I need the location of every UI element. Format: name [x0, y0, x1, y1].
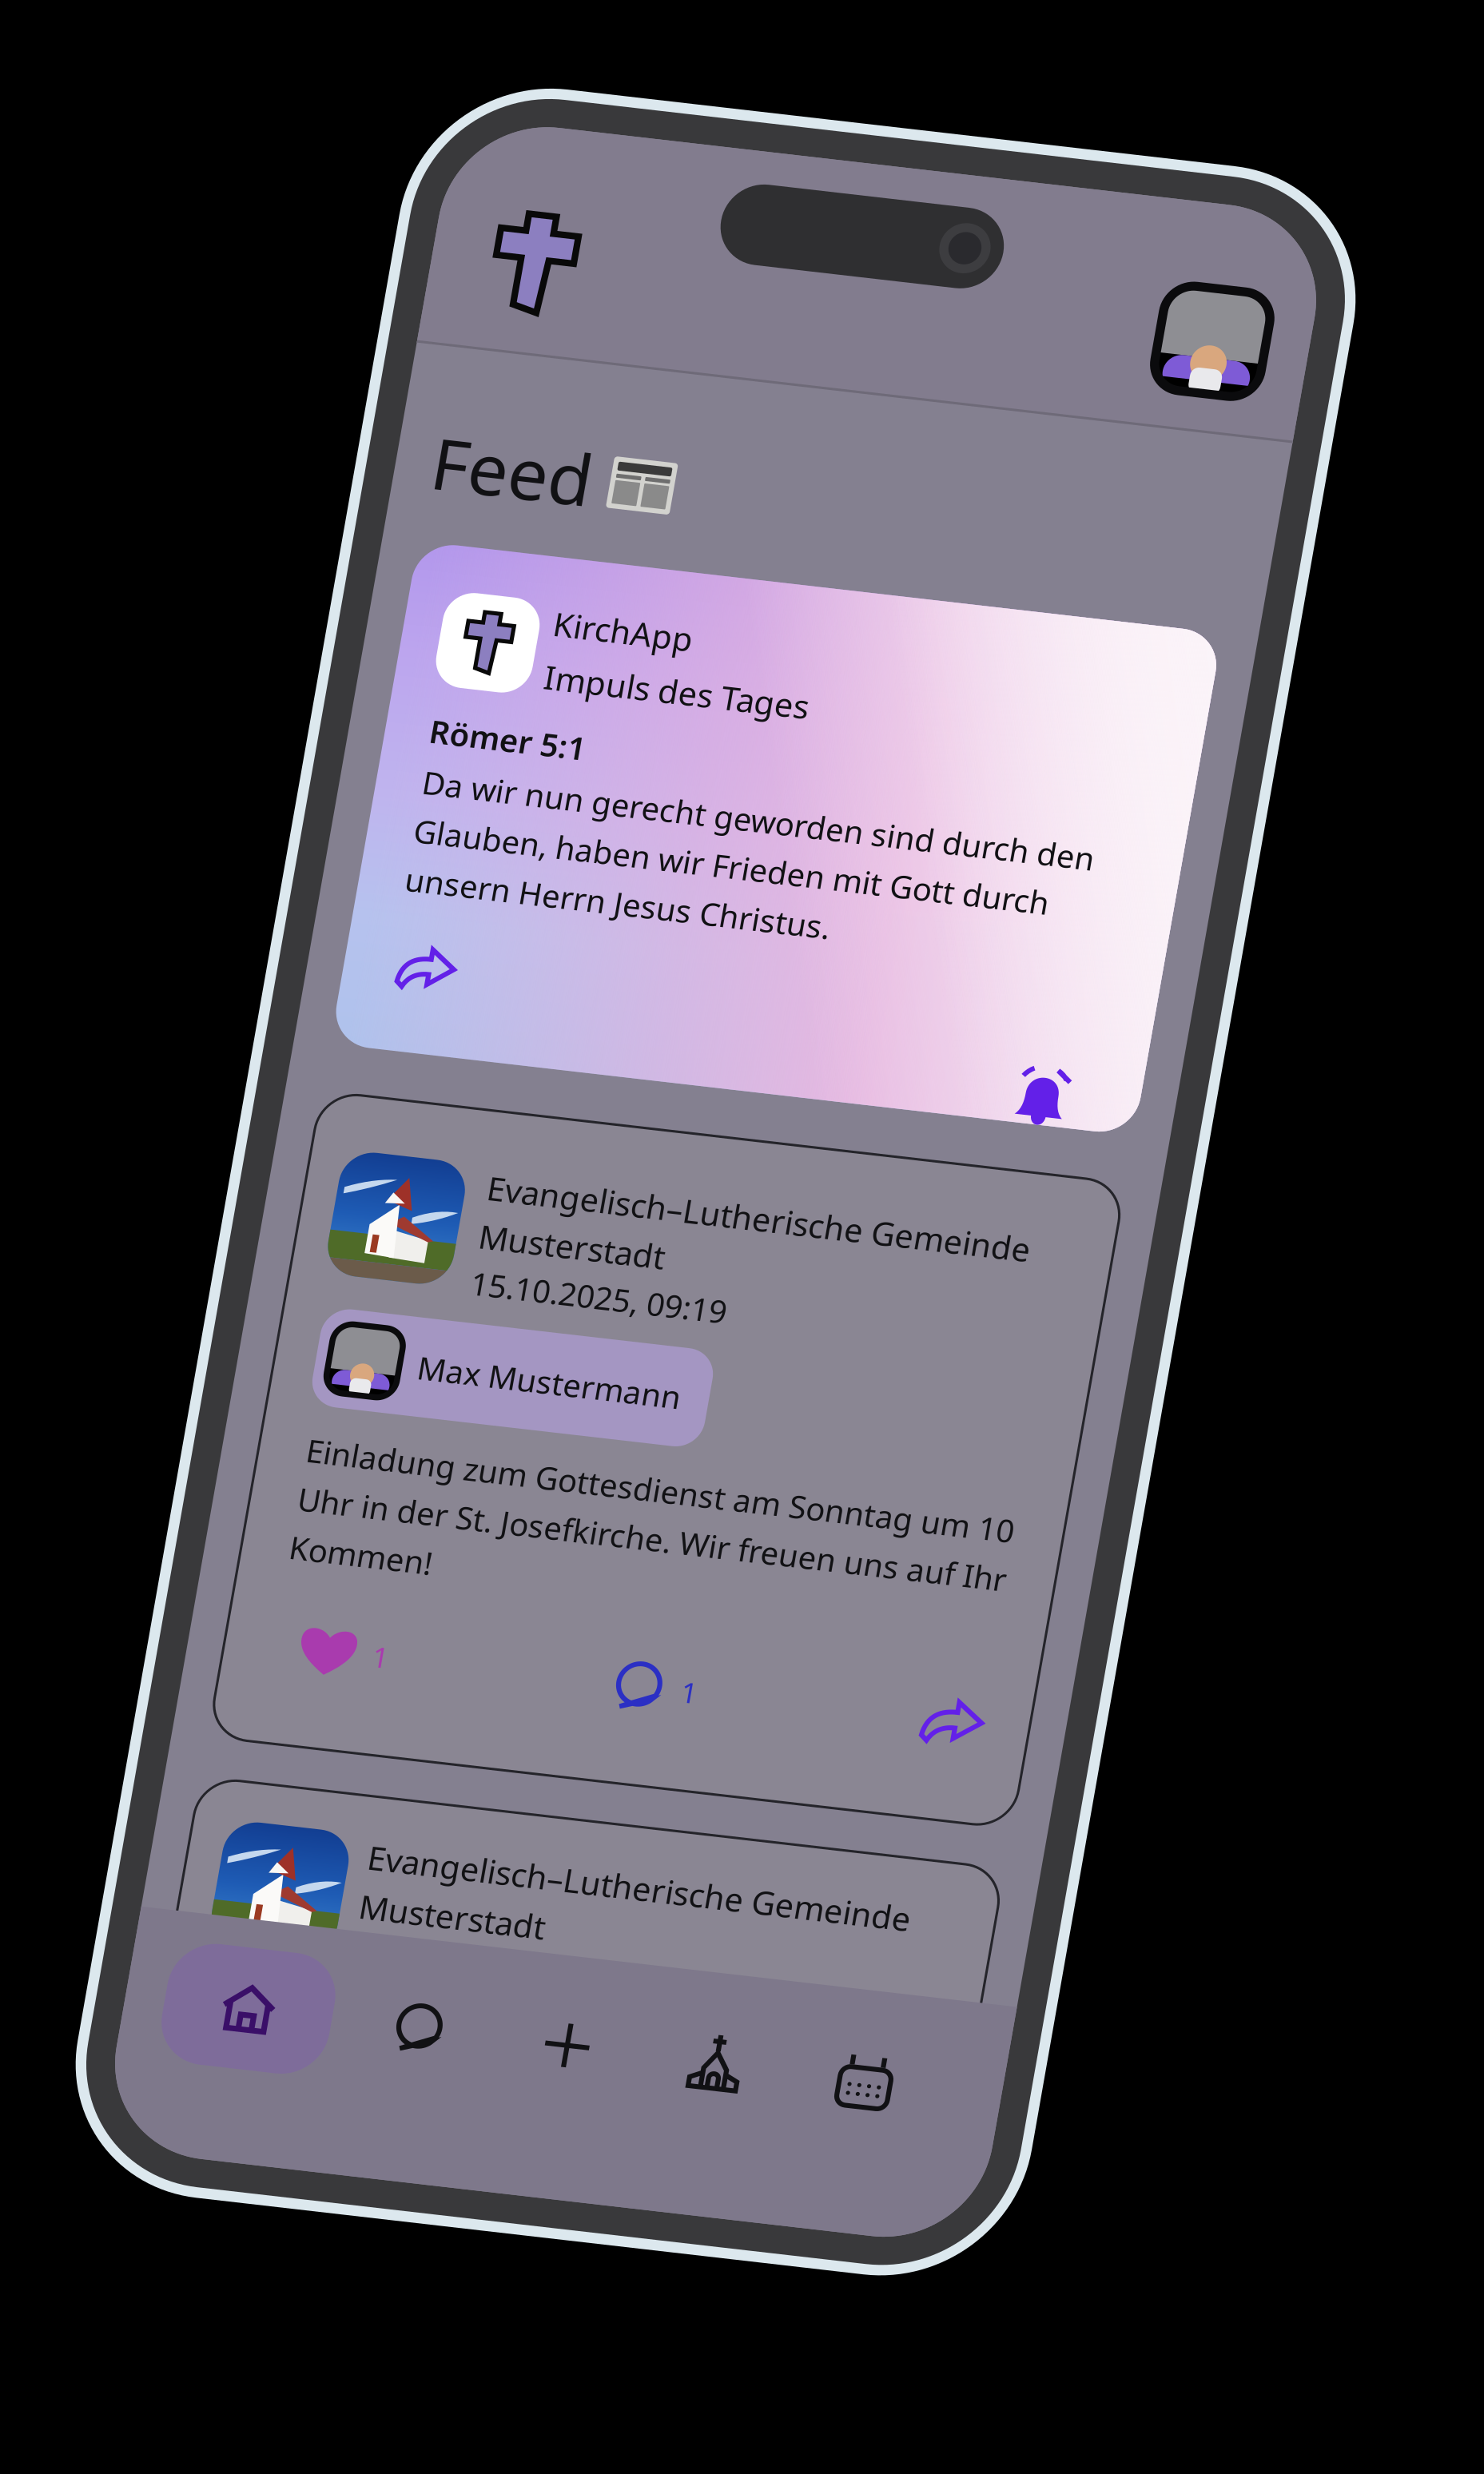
button[interactable]: Gefällt mir [137, 1510, 224, 1569]
staticText: Evangelisch–Lutherische Gemeinde Musters… [239, 1048, 771, 1139]
button[interactable]: Gemeinde [546, 1837, 667, 1959]
button[interactable]: Beitrag erstellen [401, 1838, 521, 1958]
button[interactable]: Termine [693, 1838, 813, 1958]
staticText: 15.10.2025, 09:19 [239, 1144, 490, 1185]
button[interactable]: Start [66, 1838, 230, 1958]
button[interactable]: Teilen [747, 1512, 805, 1568]
button[interactable]: Kommentare [445, 1509, 526, 1570]
button[interactable]: Erinnerung [730, 892, 851, 982]
staticText: Impuls des Tages [207, 543, 467, 586]
button[interactable]: Profil [740, 103, 886, 223]
staticText: Da wir nun gerecht geworden sind durch d… [108, 661, 766, 798]
staticText: Max Mustermann [202, 1232, 460, 1273]
button[interactable]: Chats [256, 1838, 375, 1958]
staticText: 1 [510, 1521, 526, 1558]
staticText: Einladung zum Gottesdienst am Sonntag um… [109, 1325, 804, 1463]
staticText: Evangelisch–Lutherische Gemeinde Musters… [237, 1715, 770, 1806]
staticText: 1 [208, 1521, 224, 1558]
